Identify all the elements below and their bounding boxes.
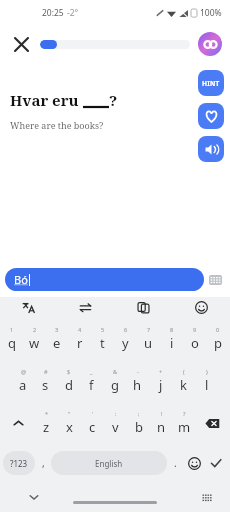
staticText: !: [161, 410, 163, 417]
staticText: q: [8, 334, 16, 352]
button[interactable]: (: [172, 360, 195, 402]
staticText: t: [100, 334, 105, 352]
button[interactable]: Keyboard: [209, 275, 222, 285]
staticText: g: [111, 376, 119, 394]
button[interactable]: 5: [91, 318, 114, 360]
staticText: &: [113, 368, 118, 375]
staticText: -: [137, 368, 139, 375]
staticText: c: [89, 418, 96, 436]
staticText: HINT: [202, 79, 220, 88]
button[interactable]: Submit: [205, 444, 227, 482]
button[interactable]: ?: [173, 402, 196, 444]
staticText: y: [122, 334, 129, 352]
button[interactable]: ;: [127, 402, 150, 444]
staticText: i: [170, 334, 174, 352]
staticText: a: [19, 376, 27, 394]
staticText: $: [67, 368, 71, 375]
button[interactable]: Hide keyboard: [26, 489, 42, 505]
button[interactable]: Play audio: [198, 136, 224, 162]
button[interactable]: Backspace: [196, 402, 229, 444]
button[interactable]: Translate: [0, 297, 57, 318]
staticText: 20:25: [42, 7, 64, 19]
staticText: 1: [10, 326, 14, 333]
staticText: Hvar eru: [10, 90, 83, 110]
staticText: ': [92, 410, 94, 417]
staticText: w: [29, 334, 40, 352]
button[interactable]: 0: [206, 318, 229, 360]
staticText: l: [205, 376, 209, 394]
staticText: k: [180, 376, 187, 394]
staticText: d: [65, 376, 73, 394]
button[interactable]: Hint: [198, 70, 224, 96]
staticText: 9: [193, 326, 197, 333]
staticText: r: [77, 334, 83, 352]
staticText: 6: [124, 326, 128, 333]
button[interactable]: ': [81, 402, 104, 444]
staticText: u: [144, 334, 153, 352]
staticText: _: [90, 368, 93, 375]
button[interactable]: 7: [137, 318, 160, 360]
staticText: *: [45, 410, 49, 417]
button[interactable]: ?123: [3, 451, 35, 475]
button[interactable]: $: [57, 360, 80, 402]
button[interactable]: +: [149, 360, 172, 402]
staticText: n: [157, 418, 166, 436]
button[interactable]: -: [126, 360, 149, 402]
staticText: x: [66, 418, 73, 436]
button[interactable]: 1: [1, 318, 23, 360]
staticText: Bó: [14, 272, 28, 287]
button[interactable]: Shift: [1, 402, 35, 444]
staticText: o: [191, 334, 199, 352]
staticText: 0: [216, 326, 220, 333]
staticText: :: [115, 410, 117, 417]
button[interactable]: _: [80, 360, 103, 402]
button[interactable]: Change keyboard: [200, 490, 214, 504]
button[interactable]: 2: [23, 318, 45, 360]
button[interactable]: &: [103, 360, 126, 402]
button[interactable]: Emoji: [172, 297, 230, 318]
staticText: ": [68, 410, 71, 417]
staticText: 7: [147, 326, 151, 333]
button[interactable]: Emoji: [183, 444, 205, 482]
button[interactable]: ): [195, 360, 218, 402]
button[interactable]: 4: [68, 318, 91, 360]
button[interactable]: Streak: [198, 32, 222, 56]
button[interactable]: Switch: [57, 297, 114, 318]
staticText: z: [43, 418, 50, 436]
staticText: f: [89, 376, 94, 394]
button[interactable]: 8: [160, 318, 183, 360]
staticText: h: [133, 376, 142, 394]
button[interactable]: 6: [114, 318, 137, 360]
staticText: b: [135, 418, 143, 436]
staticText: 100%: [200, 7, 222, 19]
staticText: -2°: [67, 7, 79, 19]
button[interactable]: Close: [8, 31, 34, 57]
staticText: j: [159, 376, 163, 394]
button[interactable]: *: [35, 402, 58, 444]
staticText: s: [42, 376, 49, 394]
staticText: Where are the books?: [10, 119, 104, 131]
staticText: ?123: [10, 458, 28, 469]
button[interactable]: :: [104, 402, 127, 444]
button[interactable]: Clipboard: [114, 297, 172, 318]
button[interactable]: Favorite: [198, 103, 224, 129]
staticText: #: [44, 368, 48, 375]
button[interactable]: 9: [183, 318, 206, 360]
button[interactable]: Bó: [5, 268, 204, 291]
button[interactable]: #: [34, 360, 57, 402]
staticText: ;: [138, 410, 140, 417]
button[interactable]: Period: [167, 444, 183, 482]
button[interactable]: 3: [45, 318, 68, 360]
staticText: m: [178, 418, 191, 436]
button[interactable]: Comma: [35, 444, 51, 482]
staticText: 4: [78, 326, 82, 333]
staticText: p: [214, 334, 222, 352]
button[interactable]: @: [11, 360, 34, 402]
staticText: +: [159, 368, 163, 375]
staticText: ?: [109, 90, 118, 110]
staticText: e: [53, 334, 61, 352]
button[interactable]: English: [51, 451, 167, 475]
button[interactable]: !: [150, 402, 173, 444]
button[interactable]: ": [58, 402, 81, 444]
staticText: 3: [55, 326, 59, 333]
